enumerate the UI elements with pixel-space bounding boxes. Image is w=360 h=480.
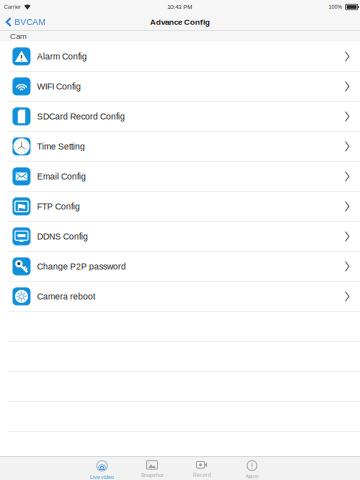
staticText: Record bbox=[193, 472, 211, 478]
staticText: SDCard Record Config bbox=[37, 112, 125, 121]
staticText: Advance Config bbox=[150, 17, 210, 26]
button[interactable]: Live video bbox=[77, 456, 127, 480]
button[interactable]: WIFI Config bbox=[0, 72, 360, 102]
staticText: DDNS Config bbox=[37, 232, 88, 241]
staticText: Snapshot bbox=[141, 472, 163, 478]
button[interactable]: Alarm bbox=[227, 456, 277, 480]
staticText: Time Setting bbox=[37, 142, 85, 151]
staticText: Cam bbox=[10, 32, 27, 41]
button[interactable]: FTP Config bbox=[0, 192, 360, 222]
button[interactable]: SDCard Record Config bbox=[0, 102, 360, 132]
staticText: FTP Config bbox=[37, 202, 80, 211]
staticText: Live video bbox=[90, 474, 114, 480]
staticText: Email Config bbox=[37, 172, 86, 181]
staticText: Alarm Config bbox=[37, 52, 87, 61]
button[interactable]: Time Setting bbox=[0, 132, 360, 162]
staticText: Change P2P password bbox=[37, 262, 126, 271]
staticText: WIFI Config bbox=[37, 82, 81, 91]
staticText: 100% bbox=[329, 4, 343, 10]
button[interactable]: DDNS Config bbox=[0, 222, 360, 252]
staticText: Carrier bbox=[4, 4, 21, 10]
button[interactable]: Change P2P password bbox=[0, 252, 360, 282]
button[interactable]: Email Config bbox=[0, 162, 360, 192]
staticText: BVCAM bbox=[14, 17, 45, 27]
staticText: Alarm bbox=[245, 474, 258, 479]
staticText: Camera reboot bbox=[37, 292, 95, 301]
button[interactable]: BVCAM bbox=[0, 14, 51, 30]
button[interactable]: Camera reboot bbox=[0, 282, 360, 312]
staticText: 10:43 PM bbox=[167, 4, 192, 10]
button[interactable]: Snapshot bbox=[127, 456, 177, 480]
button[interactable]: Record bbox=[177, 456, 227, 480]
button[interactable]: Alarm Config bbox=[0, 42, 360, 72]
